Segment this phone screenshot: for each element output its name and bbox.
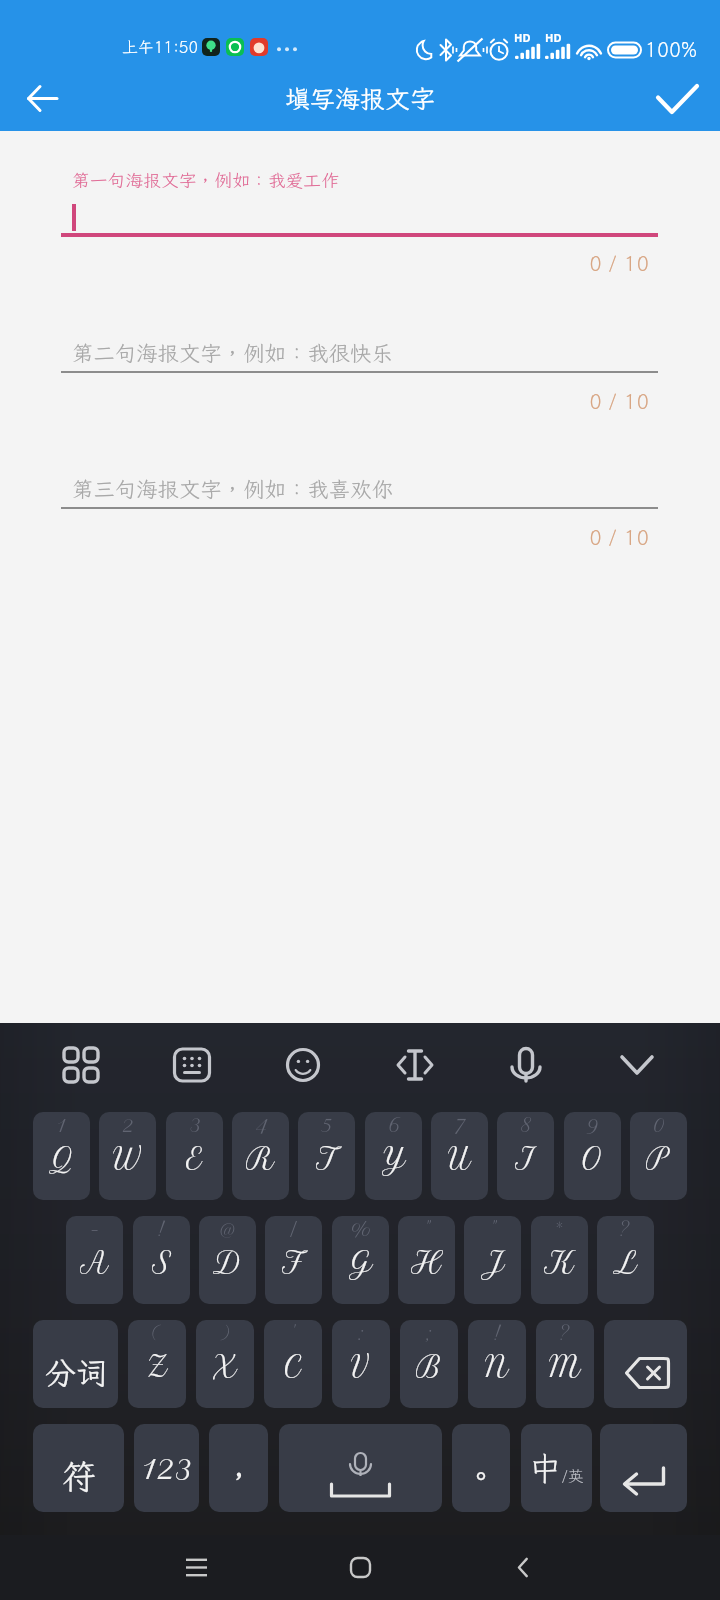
staticText: 8 bbox=[520, 1113, 532, 1137]
staticText: 5 bbox=[321, 1113, 332, 1137]
staticText: 第二句海报文字，例如：我很快乐 bbox=[72, 339, 393, 367]
staticText: Q bbox=[49, 1141, 75, 1176]
staticText: 2 bbox=[122, 1113, 134, 1137]
staticText: E bbox=[186, 1141, 203, 1176]
staticText: % bbox=[351, 1217, 371, 1241]
staticText: @ bbox=[219, 1217, 237, 1241]
button[interactable]: ! bbox=[133, 1216, 190, 1304]
staticText: 0 / 10 bbox=[61, 249, 649, 277]
staticText: W bbox=[113, 1141, 143, 1176]
button[interactable]: : bbox=[332, 1320, 390, 1408]
button[interactable]: Enter bbox=[600, 1424, 687, 1512]
staticText: 7 bbox=[454, 1113, 466, 1137]
staticText: A bbox=[80, 1245, 109, 1280]
button[interactable]: 1 bbox=[33, 1112, 90, 1200]
button[interactable]: 5 bbox=[298, 1112, 355, 1200]
staticText: R bbox=[246, 1141, 275, 1176]
staticText: V bbox=[351, 1349, 371, 1384]
button[interactable]: Keyboard layouts bbox=[55, 1039, 107, 1091]
button[interactable]: % bbox=[332, 1216, 389, 1304]
staticText: C bbox=[285, 1349, 302, 1384]
button[interactable]: @ bbox=[199, 1216, 256, 1304]
button[interactable]: ' bbox=[264, 1320, 322, 1408]
staticText: ! bbox=[158, 1217, 165, 1241]
staticText: 0 / 10 bbox=[61, 387, 649, 415]
staticText: 上午11:50 bbox=[122, 36, 199, 57]
staticText: 0 bbox=[652, 1113, 665, 1137]
button[interactable]: 9 bbox=[564, 1112, 621, 1200]
button[interactable]: Text cursor bbox=[389, 1039, 441, 1091]
staticText: U bbox=[448, 1141, 472, 1176]
staticText: ' bbox=[292, 1321, 295, 1345]
staticText: O bbox=[581, 1141, 605, 1176]
staticText: - bbox=[90, 1217, 100, 1241]
button[interactable]: 第三句海报文字，例如：我喜欢你 bbox=[61, 471, 658, 581]
button[interactable]: ! bbox=[468, 1320, 526, 1408]
staticText: Z bbox=[147, 1349, 168, 1384]
button[interactable]: Space bbox=[279, 1424, 442, 1512]
button[interactable]: ? bbox=[597, 1216, 654, 1304]
button[interactable]: Confirm bbox=[644, 66, 710, 131]
staticText: P bbox=[646, 1141, 671, 1176]
button[interactable]: ; bbox=[400, 1320, 458, 1408]
button[interactable]: Delete bbox=[604, 1320, 687, 1408]
button[interactable]: 123 bbox=[134, 1424, 199, 1512]
button[interactable]: Back bbox=[493, 1535, 553, 1600]
staticText: ， bbox=[224, 1456, 254, 1496]
staticText: ; bbox=[426, 1321, 433, 1345]
button[interactable]: 3 bbox=[166, 1112, 223, 1200]
button[interactable]: 。 bbox=[452, 1424, 510, 1512]
button[interactable]: 2 bbox=[99, 1112, 156, 1200]
button[interactable]: ( bbox=[128, 1320, 186, 1408]
staticText: N bbox=[485, 1349, 509, 1384]
staticText: ? bbox=[620, 1217, 631, 1241]
staticText: D bbox=[213, 1245, 243, 1280]
staticText: G bbox=[349, 1245, 373, 1280]
staticText: 分词 bbox=[45, 1352, 107, 1393]
button[interactable]: Keyboard bbox=[166, 1039, 218, 1091]
staticText: 4 bbox=[255, 1113, 267, 1137]
staticText: 中 bbox=[529, 1447, 562, 1489]
button[interactable]: Back bbox=[8, 66, 76, 131]
staticText: 6 bbox=[387, 1113, 400, 1137]
button[interactable]: Home bbox=[330, 1535, 390, 1600]
staticText: 3 bbox=[189, 1113, 201, 1137]
button[interactable]: 4 bbox=[232, 1112, 289, 1200]
staticText: K bbox=[544, 1245, 575, 1280]
staticText: 0 / 10 bbox=[61, 523, 649, 551]
button[interactable]: " bbox=[398, 1216, 455, 1304]
button[interactable]: ， bbox=[209, 1424, 268, 1512]
button[interactable]: 0 bbox=[630, 1112, 687, 1200]
button[interactable]: 7 bbox=[431, 1112, 488, 1200]
button[interactable]: Hide keyboard bbox=[611, 1039, 663, 1091]
button[interactable]: " bbox=[464, 1216, 521, 1304]
staticText: T bbox=[316, 1141, 338, 1176]
button[interactable]: 8 bbox=[497, 1112, 554, 1200]
staticText: I bbox=[515, 1141, 536, 1176]
button[interactable]: 第二句海报文字，例如：我很快乐 bbox=[61, 335, 658, 445]
button[interactable]: 第一句海报文字，例如：我爱工作 bbox=[61, 159, 658, 299]
staticText: 第一句海报文字，例如：我爱工作 bbox=[72, 169, 339, 192]
staticText: / bbox=[290, 1217, 298, 1241]
staticText: L bbox=[613, 1245, 638, 1280]
button[interactable]: - bbox=[66, 1216, 123, 1304]
button[interactable]: 分词 bbox=[33, 1320, 118, 1408]
button[interactable]: / bbox=[265, 1216, 322, 1304]
button[interactable]: 6 bbox=[365, 1112, 422, 1200]
button[interactable]: ) bbox=[196, 1320, 254, 1408]
staticText: ( bbox=[152, 1321, 162, 1345]
staticText: : bbox=[358, 1321, 365, 1345]
button[interactable]: Lang bbox=[521, 1424, 592, 1512]
button[interactable]: 符 bbox=[33, 1424, 124, 1512]
staticText: 。 bbox=[466, 1456, 496, 1496]
button[interactable]: ? bbox=[536, 1320, 594, 1408]
staticText: 123 bbox=[141, 1450, 192, 1486]
staticText: 100% bbox=[645, 36, 697, 62]
staticText: J bbox=[481, 1245, 505, 1280]
staticText: 第三句海报文字，例如：我喜欢你 bbox=[72, 475, 393, 503]
button[interactable]: * bbox=[531, 1216, 588, 1304]
button[interactable]: Emoji bbox=[277, 1039, 329, 1091]
button[interactable]: Voice input bbox=[500, 1039, 552, 1091]
button[interactable]: Recents bbox=[166, 1535, 226, 1600]
staticText: 9 bbox=[586, 1113, 599, 1137]
